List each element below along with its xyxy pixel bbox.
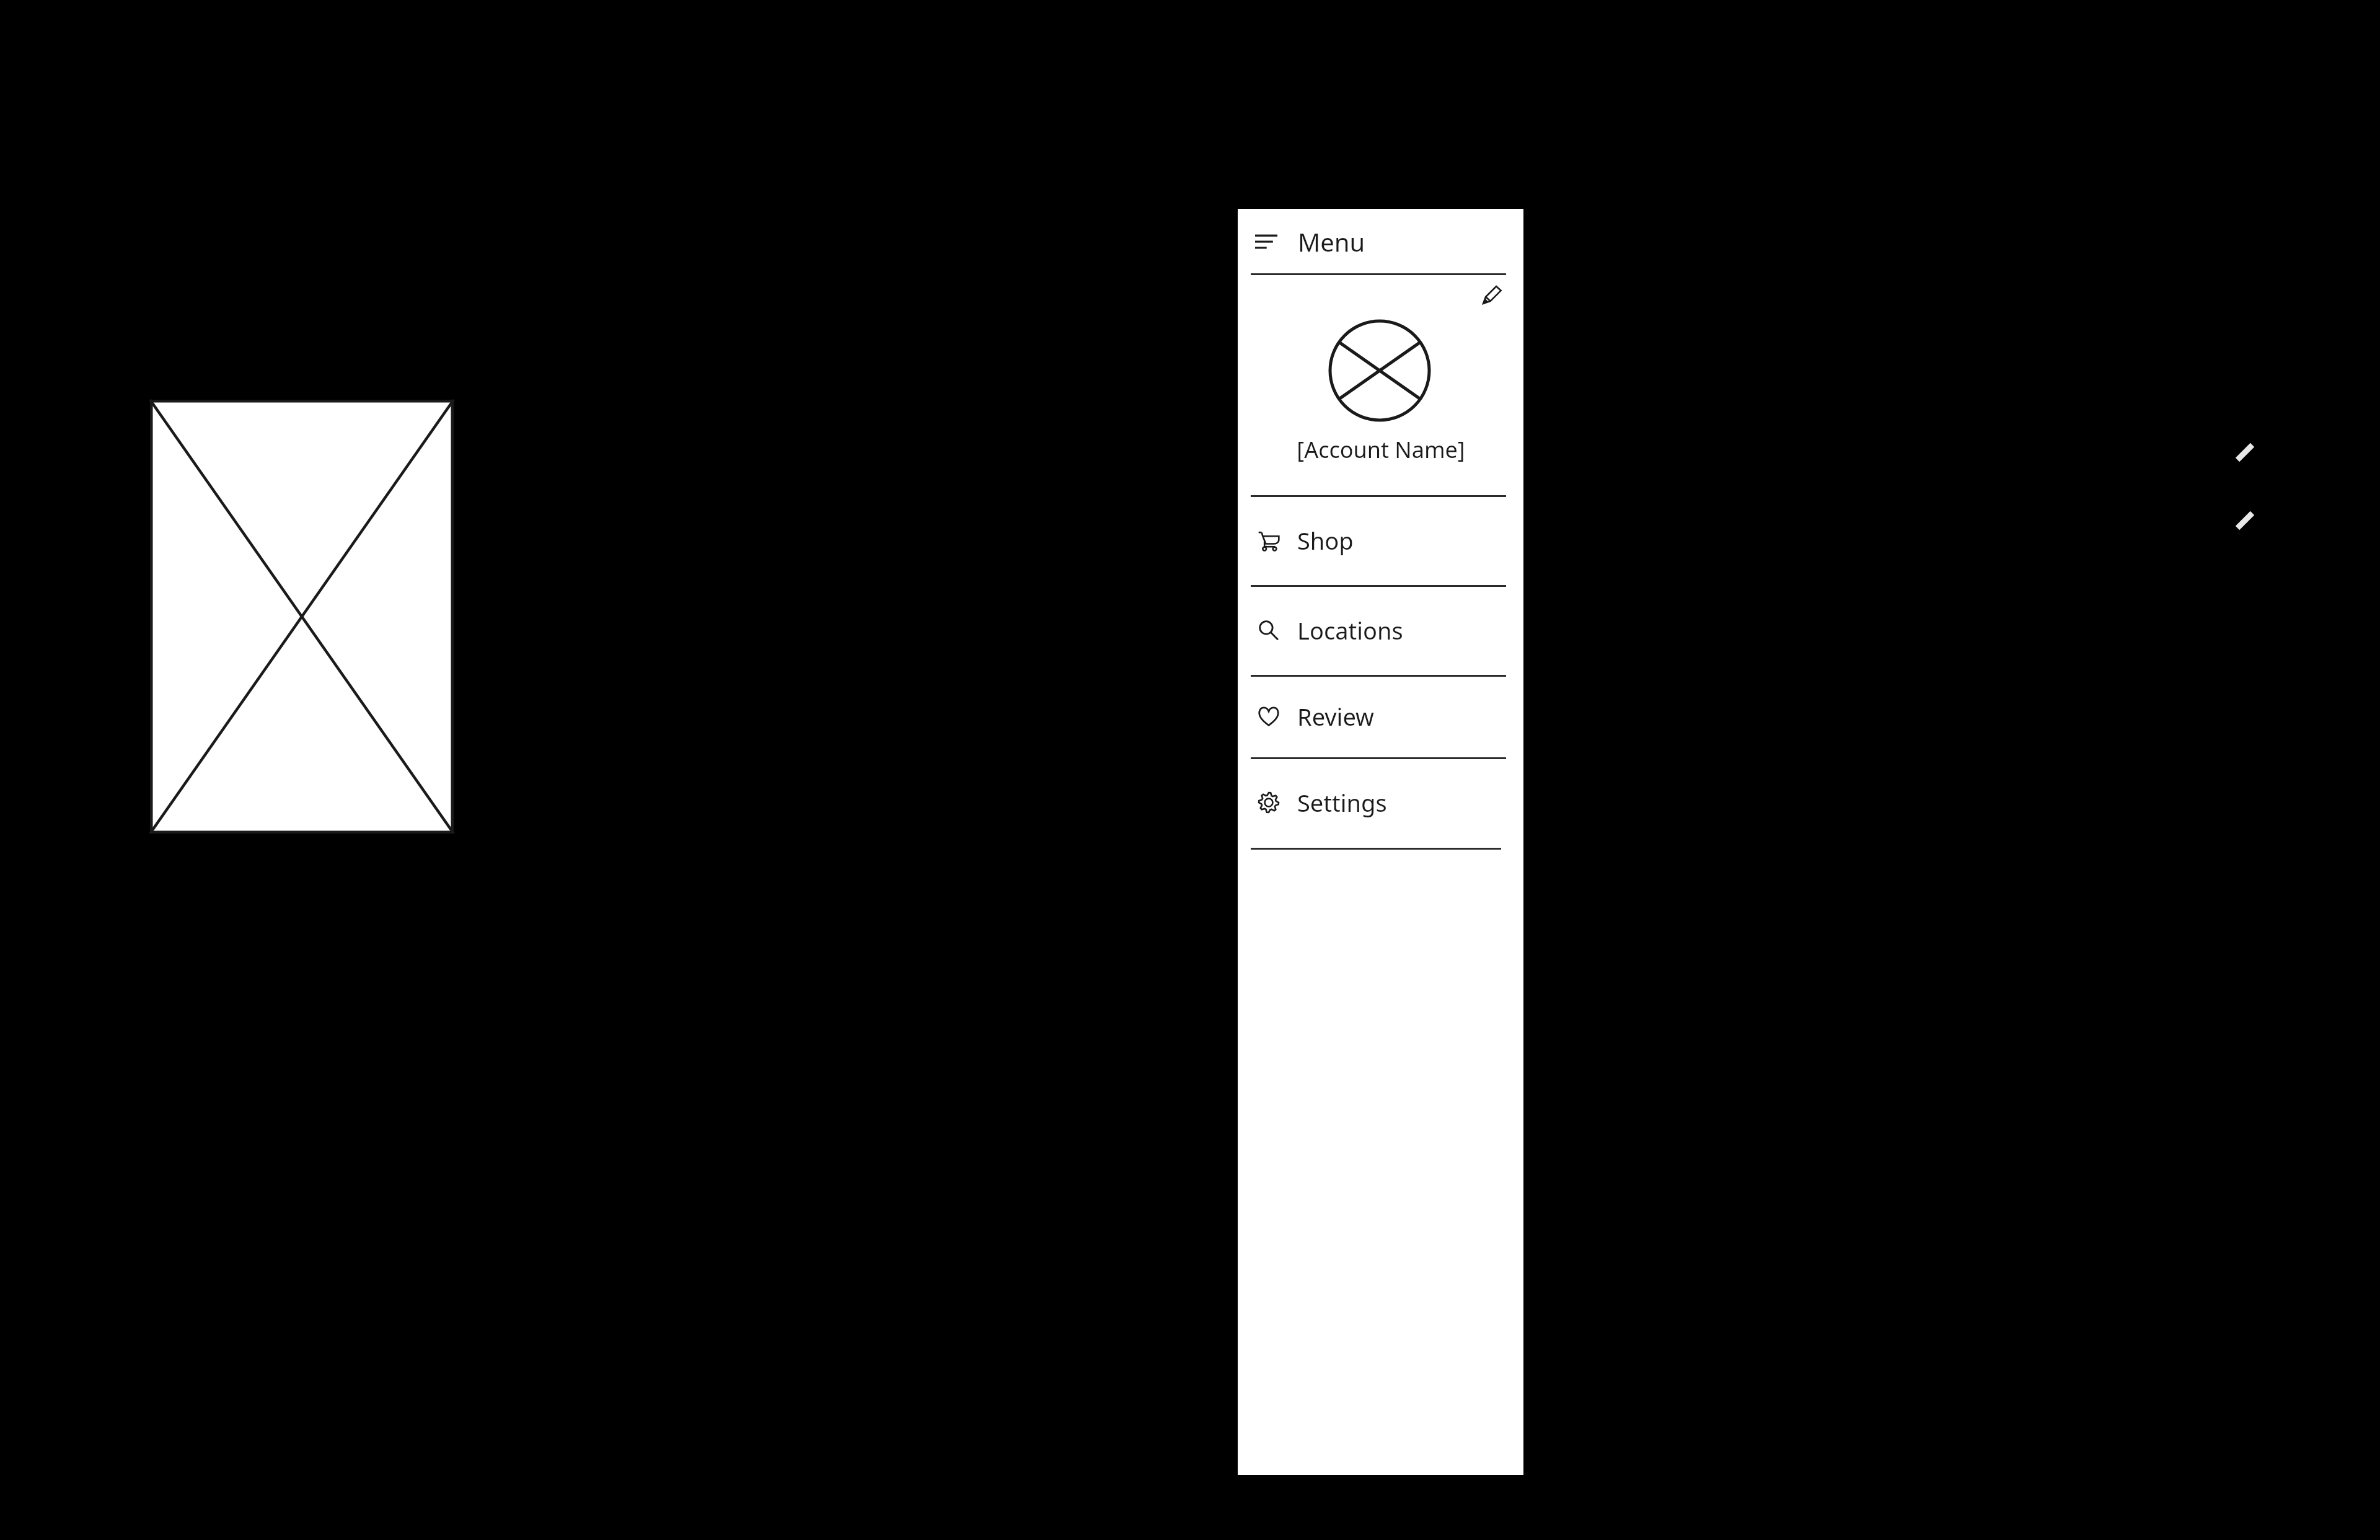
staticText: Review [1297,700,1374,733]
staticText: Shop [1297,524,1354,557]
button[interactable]: Review [1238,675,1523,757]
staticText: Settings [1297,786,1387,819]
button[interactable]: Settings [1238,757,1523,848]
staticText: [Account Name] [1297,434,1465,465]
button[interactable]: Image placeholder [150,400,454,834]
button[interactable]: Account avatar [1328,319,1431,422]
staticText: Menu [1298,225,1365,258]
staticText: Locations [1297,614,1403,646]
button[interactable]: Locations [1238,585,1523,675]
button[interactable]: Shop [1238,495,1523,585]
button[interactable]: Edit profile [1477,279,1508,310]
other: Open navigation menu [1255,233,1277,250]
button[interactable]: Open navigation menu [1238,209,1523,274]
